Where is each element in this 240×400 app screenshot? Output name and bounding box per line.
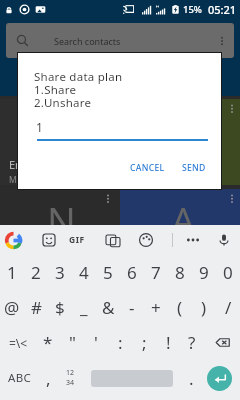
button[interactable]: ' <box>84 325 108 360</box>
staticText: A <box>171 194 196 246</box>
button[interactable]: Enter <box>199 360 240 396</box>
staticText: Search contacts <box>54 35 121 47</box>
button[interactable]: 8 <box>168 255 192 290</box>
staticText: Chris <box>129 157 156 172</box>
staticText: Mobile <box>9 174 37 186</box>
staticText: ( <box>177 296 183 319</box>
staticText: 2 <box>31 261 41 284</box>
staticText: * <box>43 331 53 354</box>
staticText: 8 <box>175 261 185 284</box>
staticText: 5 <box>103 261 113 284</box>
staticText: GIF <box>69 234 85 246</box>
staticText: Mobile <box>129 264 157 276</box>
staticText: $ <box>55 296 65 319</box>
button[interactable]: , <box>38 360 59 396</box>
button[interactable]: / <box>216 290 240 325</box>
button[interactable]: Translate <box>106 233 120 247</box>
button[interactable]: : <box>108 325 132 360</box>
staticText: , <box>46 367 51 390</box>
button[interactable]: 1 <box>0 255 24 290</box>
button[interactable]: SEND <box>179 160 209 176</box>
staticText: . <box>189 367 194 390</box>
button[interactable]: Search contacts <box>6 23 234 58</box>
button[interactable]: 5 <box>96 255 120 290</box>
staticText: 7 <box>151 261 161 284</box>
button[interactable]: ; <box>132 325 156 360</box>
button[interactable]: N <box>0 189 116 275</box>
staticText: Nick <box>9 247 32 262</box>
staticText: C <box>171 104 196 156</box>
staticText: 3 <box>55 261 65 284</box>
button[interactable]: - <box>120 290 144 325</box>
button[interactable]: GIF <box>69 234 85 246</box>
staticText: _ <box>80 296 88 319</box>
button[interactable]: _ <box>72 290 96 325</box>
staticText: ) <box>201 296 207 319</box>
button[interactable]: " <box>60 325 84 360</box>
staticText: ' <box>94 331 98 354</box>
button[interactable]: More options <box>186 233 200 247</box>
staticText: ; <box>142 331 147 354</box>
button[interactable]: 6 <box>120 255 144 290</box>
button[interactable]: ! <box>156 325 180 360</box>
staticText: / <box>225 296 232 319</box>
staticText: 4 <box>79 261 89 284</box>
button[interactable]: 0 <box>216 255 240 290</box>
staticText: ! <box>166 331 171 354</box>
staticText: SEND <box>182 162 206 174</box>
staticText: CANCEL <box>130 162 165 174</box>
button[interactable]: C <box>120 99 240 185</box>
staticText: Share data plan <box>34 69 123 85</box>
staticText: 34 <box>66 378 75 388</box>
staticText: 2.Unshare <box>34 95 92 111</box>
button[interactable]: @ <box>0 290 24 325</box>
button[interactable]: ( <box>168 290 192 325</box>
button[interactable]: * <box>36 325 60 360</box>
staticText: ? <box>188 331 196 354</box>
staticText: 12 <box>66 368 75 378</box>
button[interactable]: Google search <box>5 232 22 249</box>
button[interactable]: + <box>144 290 168 325</box>
button[interactable]: Stickers <box>42 233 56 247</box>
staticText: 15% <box>183 3 202 16</box>
staticText: 05:21 <box>208 2 237 17</box>
button[interactable]: Voice input <box>217 233 231 247</box>
staticText: + <box>151 296 161 319</box>
button[interactable]: Themes <box>139 233 153 247</box>
button[interactable]: Backspace <box>204 325 240 360</box>
button[interactable]: 3 <box>48 255 72 290</box>
staticText: 1 <box>7 261 17 284</box>
staticText: Mobile <box>9 264 37 276</box>
button[interactable]: ) <box>192 290 216 325</box>
button[interactable]: $ <box>48 290 72 325</box>
staticText: 1 <box>36 119 43 135</box>
button[interactable]: 2 <box>24 255 48 290</box>
staticText: - <box>129 296 135 319</box>
button[interactable]: A <box>120 189 240 275</box>
staticText: 6 <box>127 261 137 284</box>
staticText: E <box>50 104 72 156</box>
button[interactable]: CANCEL <box>127 160 168 176</box>
button[interactable]: . <box>183 360 199 396</box>
button[interactable]: ABC <box>0 360 38 396</box>
staticText: & <box>102 296 115 319</box>
button[interactable]: # <box>24 290 48 325</box>
staticText: @ <box>4 296 20 319</box>
button[interactable]: Numbers <box>59 360 81 396</box>
staticText: : <box>118 331 123 354</box>
button[interactable]: 4 <box>72 255 96 290</box>
staticText: # <box>31 296 42 319</box>
button[interactable]: ? <box>180 325 204 360</box>
button[interactable]: E <box>0 99 116 185</box>
button[interactable]: =\< <box>0 325 36 360</box>
staticText: 1.Share <box>34 82 77 98</box>
staticText: N <box>47 194 76 246</box>
button[interactable]: & <box>96 290 120 325</box>
button[interactable]: 7 <box>144 255 168 290</box>
staticText: 0 <box>223 261 233 284</box>
staticText: " <box>69 331 76 354</box>
button[interactable]: 9 <box>192 255 216 290</box>
